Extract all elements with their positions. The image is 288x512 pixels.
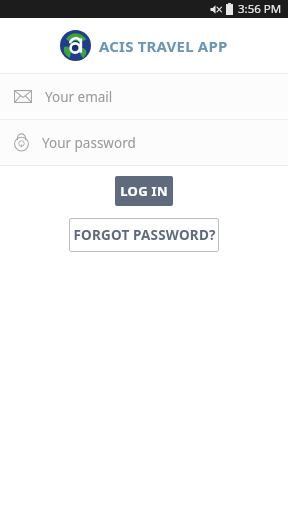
button[interactable]: LOG IN: [115, 176, 173, 206]
staticText: Your email: [45, 88, 113, 106]
staticText: Your password: [42, 134, 136, 152]
staticText: ACIS TRAVEL APP: [99, 36, 228, 56]
staticText: LOG IN: [120, 182, 168, 200]
staticText: FORGOT PASSWORD?: [73, 226, 216, 244]
button[interactable]: Email field: [0, 74, 288, 119]
staticText: 3:56 PM: [238, 1, 282, 17]
button[interactable]: FORGOT PASSWORD?: [69, 218, 219, 252]
button[interactable]: Password field: [0, 120, 288, 165]
